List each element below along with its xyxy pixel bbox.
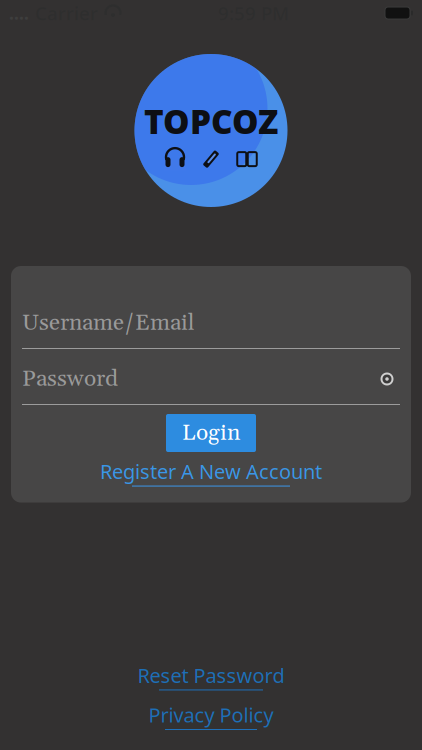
button[interactable]: Username/Email	[11, 310, 411, 349]
staticText: Username/Email	[22, 309, 194, 337]
button[interactable]: Login	[166, 414, 256, 452]
staticText: Password	[22, 365, 118, 393]
staticText: Login	[182, 419, 240, 447]
button[interactable]: Privacy Policy	[148, 701, 273, 730]
button[interactable]: Show password	[374, 368, 400, 390]
staticText: TOPCOZ	[144, 99, 278, 143]
button[interactable]: Reset Password	[137, 662, 284, 690]
button[interactable]: Register A New Account	[100, 458, 322, 487]
staticText: Privacy Policy	[148, 701, 273, 728]
staticText: Register A New Account	[100, 458, 322, 485]
button[interactable]: Password	[11, 366, 411, 405]
staticText: Reset Password	[137, 662, 284, 688]
